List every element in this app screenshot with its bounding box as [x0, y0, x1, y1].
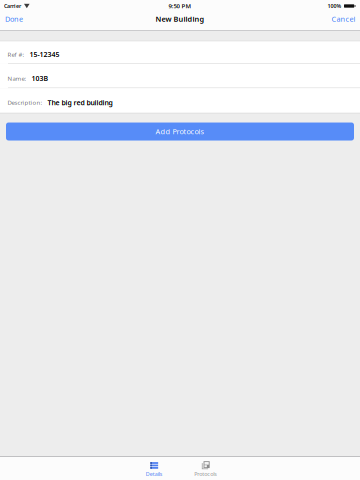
staticText: The big red building — [47, 98, 112, 107]
staticText: 9:50 PM — [168, 2, 191, 10]
staticText: New Building — [155, 14, 204, 24]
button[interactable]: Details — [134, 457, 174, 480]
button[interactable]: Add Protocols — [6, 122, 354, 140]
button[interactable]: Cancel — [325, 12, 360, 30]
staticText: Carrier — [4, 2, 21, 10]
staticText: 15-12345 — [29, 50, 59, 59]
staticText: Ref #: — [7, 50, 24, 58]
staticText: Details — [146, 470, 163, 478]
staticText: Done — [5, 14, 23, 24]
staticText: Name: — [7, 74, 26, 82]
button[interactable]: Done — [0, 12, 29, 30]
staticText: Add Protocols — [155, 126, 204, 136]
staticText: Cancel — [331, 14, 355, 24]
staticText: Protocols — [194, 470, 217, 478]
staticText: 100% — [327, 2, 341, 10]
button[interactable]: Protocols — [186, 457, 226, 480]
staticText: 103B — [31, 74, 48, 83]
staticText: Description: — [7, 98, 42, 107]
